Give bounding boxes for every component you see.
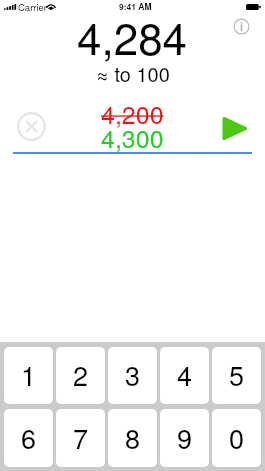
button[interactable]: 6 bbox=[4, 409, 53, 467]
staticText: 4,300 bbox=[101, 119, 164, 155]
staticText: 8 bbox=[125, 418, 141, 457]
button[interactable]: 3 bbox=[108, 347, 157, 404]
staticText: 4,284 bbox=[77, 4, 188, 67]
button[interactable]: Info bbox=[231, 16, 252, 37]
button[interactable]: 8 bbox=[108, 409, 157, 467]
staticText: 1 bbox=[21, 355, 37, 394]
staticText: 6 bbox=[21, 418, 37, 457]
staticText: 4,200 bbox=[101, 95, 164, 131]
button[interactable]: 2 bbox=[56, 347, 105, 404]
staticText: 9 bbox=[177, 418, 193, 457]
staticText: 4 bbox=[177, 355, 193, 394]
staticText: Carrier bbox=[18, 0, 48, 14]
staticText: 7 bbox=[73, 418, 89, 457]
staticText: 0 bbox=[229, 418, 245, 457]
button[interactable]: 1 bbox=[4, 347, 53, 404]
staticText: 3 bbox=[125, 355, 141, 394]
button[interactable]: Clear bbox=[17, 112, 46, 141]
staticText: ≈ to 100 bbox=[96, 59, 170, 88]
button[interactable]: 7 bbox=[56, 409, 105, 467]
button[interactable]: Play bbox=[220, 114, 250, 144]
button[interactable]: 5 bbox=[212, 347, 261, 404]
staticText: 5 bbox=[229, 355, 245, 394]
staticText: 2 bbox=[73, 355, 89, 394]
button[interactable]: 9 bbox=[160, 409, 209, 467]
staticText: 9:41 AM bbox=[119, 0, 152, 12]
button[interactable]: 0 bbox=[212, 409, 261, 467]
button[interactable]: 4 bbox=[160, 347, 209, 404]
